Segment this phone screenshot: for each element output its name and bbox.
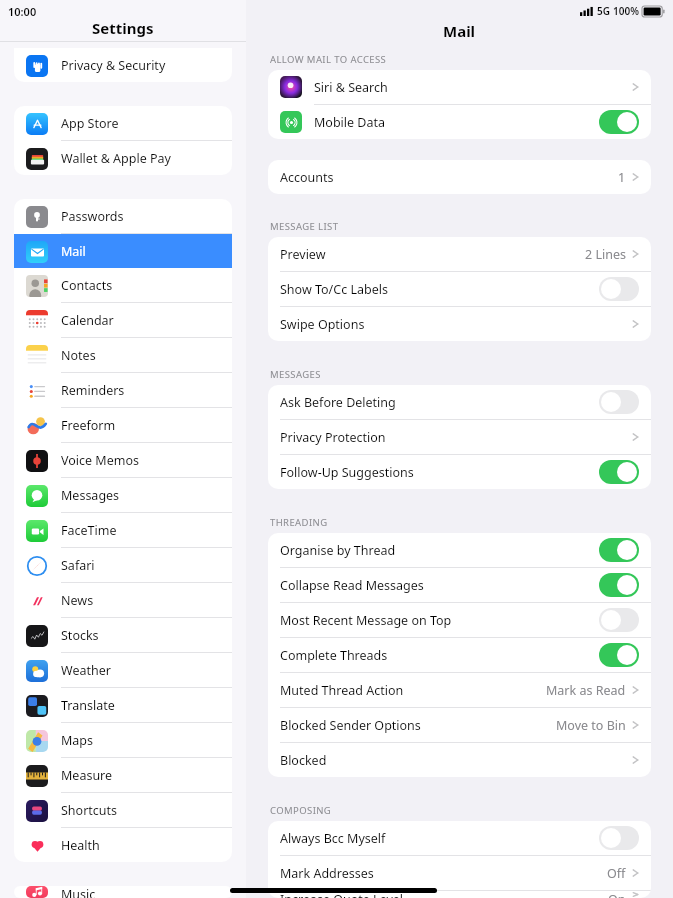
button[interactable]: Voice Memos	[14, 443, 232, 477]
staticText: Measure	[61, 767, 113, 784]
button[interactable]: Weather	[14, 653, 232, 687]
button[interactable]: FaceTime	[14, 513, 232, 547]
button[interactable]: Mail	[14, 234, 232, 268]
staticText: Siri & Search	[314, 79, 632, 96]
button[interactable]: Messages	[14, 478, 232, 512]
staticText: Move to Bin	[556, 717, 626, 734]
staticText: FaceTime	[61, 522, 117, 539]
button[interactable]: Most Recent Message on Top	[268, 603, 651, 637]
button[interactable]: Translate	[14, 688, 232, 722]
staticText: MESSAGE LIST	[270, 220, 339, 233]
staticText: Translate	[61, 697, 115, 714]
button[interactable]: Accounts	[268, 160, 651, 194]
button[interactable]: On	[599, 110, 639, 134]
staticText: Privacy Protection	[280, 429, 632, 446]
button[interactable]: News	[14, 583, 232, 617]
button[interactable]: Off	[599, 826, 639, 850]
staticText: Mail	[61, 243, 86, 260]
staticText: Most Recent Message on Top	[280, 612, 599, 629]
staticText: Ask Before Deleting	[280, 394, 599, 411]
staticText: Reminders	[61, 382, 125, 399]
staticText: 10:00	[8, 4, 37, 19]
staticText: Shortcuts	[61, 802, 118, 819]
button[interactable]: Calendar	[14, 303, 232, 337]
button[interactable]: Off	[599, 277, 639, 301]
staticText: Preview	[280, 246, 585, 263]
button[interactable]: On	[599, 460, 639, 484]
button[interactable]: Safari	[14, 548, 232, 582]
staticText: Muted Thread Action	[280, 682, 546, 699]
button[interactable]: Swipe Options	[268, 307, 651, 341]
staticText: Settings	[92, 18, 154, 38]
staticText: COMPOSING	[270, 804, 332, 817]
staticText: Health	[61, 837, 100, 854]
staticText: 1	[618, 169, 626, 186]
button[interactable]: On	[599, 573, 639, 597]
staticText: Freeform	[61, 417, 116, 434]
staticText: Stocks	[61, 627, 99, 644]
button[interactable]: Privacy & Security	[14, 48, 232, 82]
staticText: On	[608, 891, 626, 898]
staticText: Off	[607, 865, 626, 882]
button[interactable]: Shortcuts	[14, 793, 232, 827]
button[interactable]: Blocked	[268, 743, 651, 777]
staticText: 5G	[597, 4, 610, 18]
button[interactable]: Notes	[14, 338, 232, 372]
staticText: MESSAGES	[270, 368, 321, 381]
button[interactable]: Stocks	[14, 618, 232, 652]
staticText: Notes	[61, 347, 96, 364]
staticText: Maps	[61, 732, 94, 749]
button[interactable]: Ask Before Deleting	[268, 385, 651, 419]
staticText: Follow-Up Suggestions	[280, 464, 599, 481]
staticText: Calendar	[61, 312, 114, 329]
button[interactable]: Preview	[268, 237, 651, 271]
staticText: Mobile Data	[314, 114, 599, 131]
button[interactable]: Freeform	[14, 408, 232, 442]
staticText: Increase Quote Level	[280, 891, 608, 898]
staticText: Swipe Options	[280, 316, 632, 333]
button[interactable]: App Store	[14, 106, 232, 140]
button[interactable]: Wallet & Apple Pay	[14, 141, 232, 175]
button[interactable]: Reminders	[14, 373, 232, 407]
staticText: Accounts	[280, 169, 618, 186]
button[interactable]: Mobile Data	[268, 105, 651, 139]
staticText: Organise by Thread	[280, 542, 599, 559]
button[interactable]: Complete Threads	[268, 638, 651, 672]
button[interactable]: Music	[14, 886, 232, 898]
button[interactable]: Contacts	[14, 268, 232, 302]
button[interactable]: Privacy Protection	[268, 420, 651, 454]
button[interactable]: On	[599, 538, 639, 562]
button[interactable]: Blocked Sender Options	[268, 708, 651, 742]
button[interactable]: Measure	[14, 758, 232, 792]
button[interactable]: Increase Quote Level	[268, 891, 651, 898]
button[interactable]: Health	[14, 828, 232, 862]
staticText: Music	[61, 886, 96, 898]
button[interactable]: Off	[599, 390, 639, 414]
staticText: Safari	[61, 557, 95, 574]
staticText: ALLOW MAIL TO ACCESS	[270, 53, 387, 66]
staticText: 100%	[613, 4, 639, 18]
button[interactable]: Mark Addresses	[268, 856, 651, 890]
button[interactable]: Off	[599, 608, 639, 632]
staticText: Wallet & Apple Pay	[61, 150, 171, 167]
button[interactable]: Organise by Thread	[268, 533, 651, 567]
button[interactable]: Always Bcc Myself	[268, 821, 651, 855]
button[interactable]: Passwords	[14, 199, 232, 233]
staticText: Contacts	[61, 277, 113, 294]
staticText: THREADING	[270, 516, 328, 529]
staticText: Passwords	[61, 208, 124, 225]
button[interactable]: Muted Thread Action	[268, 673, 651, 707]
button[interactable]: Show To/Cc Labels	[268, 272, 651, 306]
button[interactable]: On	[599, 643, 639, 667]
button[interactable]: Collapse Read Messages	[268, 568, 651, 602]
staticText: Messages	[61, 487, 120, 504]
button[interactable]: Maps	[14, 723, 232, 757]
staticText: Weather	[61, 662, 111, 679]
staticText: Collapse Read Messages	[280, 577, 599, 594]
staticText: Privacy & Security	[61, 57, 166, 74]
staticText: Voice Memos	[61, 452, 139, 469]
staticText: News	[61, 592, 94, 609]
staticText: Show To/Cc Labels	[280, 281, 599, 298]
button[interactable]: Follow-Up Suggestions	[268, 455, 651, 489]
button[interactable]: Siri & Search	[268, 70, 651, 104]
